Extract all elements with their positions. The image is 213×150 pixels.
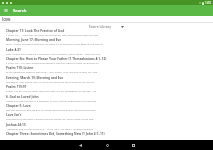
staticText: Joshua 24:15	[6, 123, 26, 127]
button[interactable]: Back	[76, 141, 85, 150]
staticText: blessed as I am and to love of Christ an…	[6, 80, 94, 83]
staticText: Search	[13, 8, 27, 14]
button[interactable]: Chapter Three: Sometimes Did, Something …	[0, 132, 213, 141]
button[interactable]: Entire Library	[87, 24, 126, 29]
staticText: Chapter 17: Look The Practice of God	[6, 29, 65, 33]
staticText: Chapter 5: Love	[6, 104, 31, 108]
button[interactable]: Chapter 17: Look The Practice of God	[0, 29, 213, 38]
staticText: 1 Thes. 4:9 – ...And over all these virt…	[6, 33, 98, 36]
button[interactable]: Morning, June 17: Morning and Eve	[0, 38, 213, 47]
staticText: Psalm 119: Listen	[6, 66, 34, 70]
button[interactable]: Recent apps	[129, 141, 138, 150]
staticText: of my being that keep us with love – You…	[6, 70, 98, 73]
button[interactable]: Joshua 24:15	[0, 123, 213, 132]
staticText: said: “Today this scripture is fulfilled…	[6, 52, 101, 55]
button[interactable]: Chapter 5: Love	[0, 104, 213, 113]
staticText: Did you do a first and we first for when…	[6, 108, 96, 111]
staticText: Psalm 119 97–104 Oh how I love your law!…	[6, 89, 97, 92]
button[interactable]: Open navigation drawer	[2, 7, 9, 14]
staticText: Love Isn't	[6, 113, 22, 117]
button[interactable]: 6. God so Loved John	[0, 95, 213, 104]
staticText: love	[2, 16, 11, 22]
staticText: Evening, March 19: Morning and Eve	[6, 76, 64, 80]
button[interactable]: Evening, March 19: Morning and Eve	[0, 76, 213, 85]
staticText: Psalm 119:97	[6, 85, 27, 89]
staticText: Entire Library	[89, 24, 111, 29]
staticText: 1:05	[205, 1, 211, 5]
button[interactable]: Home	[103, 141, 112, 150]
button[interactable]: Psalm 119: Listen	[0, 66, 213, 75]
staticText: 6. God so Loved John	[6, 95, 39, 99]
staticText: 1 Thes. 4:9 – 10 Now concerning brotherl…	[6, 61, 99, 64]
button[interactable]: Psalm 119:97	[0, 85, 213, 94]
staticText: and I – in the following Meaning The Bib…	[6, 42, 103, 45]
button[interactable]: Chapter Six: How to Please Your Father (…	[0, 57, 213, 66]
button[interactable]: Luke 4:21	[0, 48, 213, 57]
staticText: Luke 4:21	[6, 48, 21, 52]
staticText: Love were to new signs a strong thing of…	[6, 117, 94, 120]
button[interactable]: Love Isn't	[0, 113, 213, 122]
staticText: Morning, June 17: Morning and Eve	[6, 38, 62, 42]
staticText: Under The The thought is a kingdom of Go…	[6, 99, 97, 102]
staticText: Chapter Three: Sometimes Did, Something …	[6, 132, 105, 136]
staticText: Chapter Six: How to Please Your Father (…	[6, 57, 107, 61]
staticText: ...different and such a house to a... to…	[6, 127, 93, 130]
